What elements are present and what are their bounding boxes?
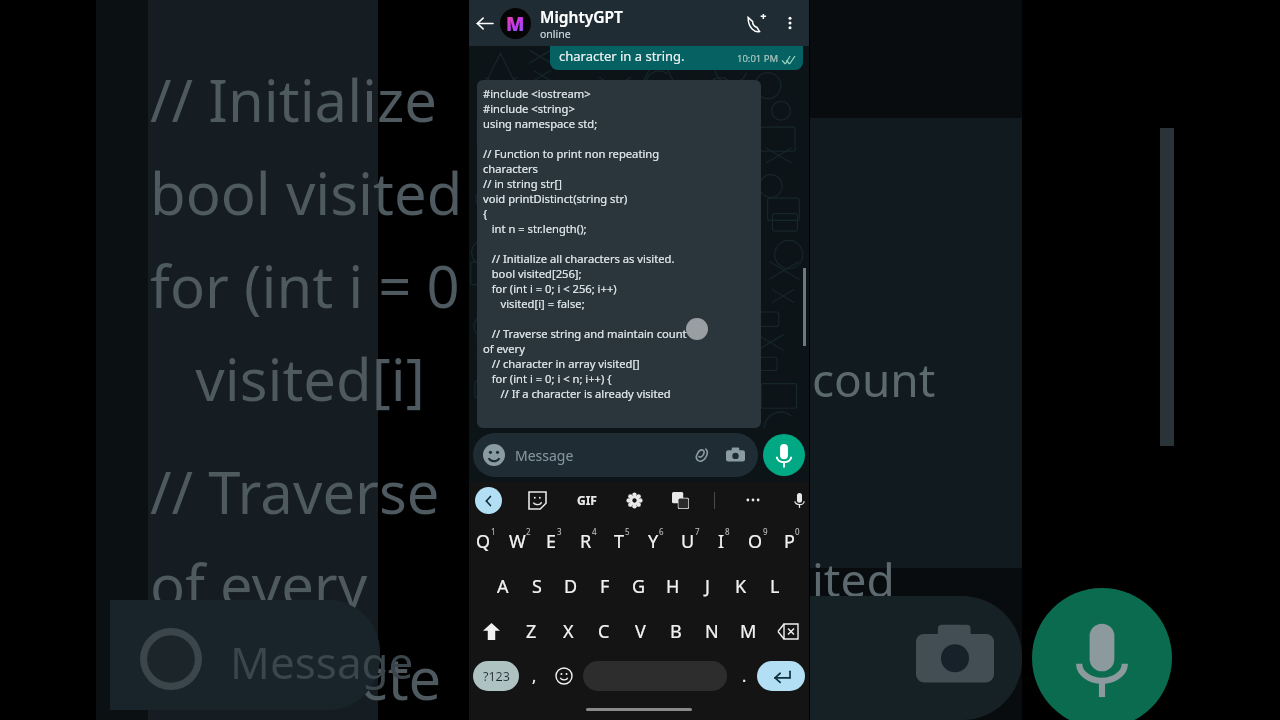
button[interactable]: Z [513,609,550,654]
button[interactable]: Settings [620,486,648,514]
button[interactable]: W [503,518,537,564]
staticText: 4 [592,526,597,537]
button[interactable]: O [741,518,775,564]
button[interactable]: S [520,564,554,609]
staticText: // Traverse [150,452,440,531]
button[interactable]: M [730,609,766,654]
button[interactable]: E [537,518,571,564]
staticText: // character in array visited[] [483,356,640,371]
button[interactable]: ?123 [473,661,519,691]
staticText: P [784,529,795,554]
button[interactable]: GIF [571,484,603,516]
staticText: X [563,619,574,644]
staticText: 5 [625,526,630,537]
button[interactable]: , [519,654,549,698]
staticText: B [670,619,682,644]
staticText: T [614,529,625,554]
button[interactable]: #include <iostream> [477,80,761,428]
staticText: of every [150,545,368,624]
button[interactable]: T [605,518,639,564]
button[interactable]: More options [773,6,807,40]
button[interactable]: K [724,564,758,609]
staticText: V [635,619,646,644]
button[interactable]: G [622,564,656,609]
button[interactable]: U [673,518,707,564]
button[interactable]: F [588,564,622,609]
button[interactable]: Camera [722,442,748,468]
staticText: N [705,619,719,644]
staticText: E [546,529,557,554]
button[interactable]: J [690,564,724,609]
staticText: // characte [150,638,442,717]
button[interactable]: Emoji [549,654,579,698]
staticText: count [812,348,936,411]
button[interactable]: . [731,654,757,698]
button[interactable]: Back [475,487,502,514]
button[interactable]: P [775,518,809,564]
staticText: 9 [763,526,768,537]
button[interactable]: Shift [469,609,513,654]
button[interactable]: Translate [666,486,694,514]
button[interactable]: Message [473,433,758,477]
button[interactable]: Back [469,8,499,38]
button[interactable]: C [586,609,622,654]
staticText: 2 [526,526,531,537]
staticText: F [600,574,610,599]
staticText: visited[i] [150,339,425,418]
staticText: characters [483,161,538,176]
button[interactable]: More [738,485,768,515]
staticText: 7 [695,526,700,537]
button[interactable]: R [571,518,605,564]
button[interactable]: character in a string. [550,46,803,70]
button[interactable]: Profile photo [500,8,531,39]
staticText: D [564,574,578,599]
button[interactable]: Enter [757,661,805,691]
button[interactable]: Backspace [766,609,809,654]
staticText: // Function to print non repeating [483,146,660,161]
staticText: bool visited [150,153,463,232]
button[interactable]: H [656,564,690,609]
staticText: #include <string> [483,101,575,116]
button[interactable]: L [758,564,792,609]
staticText: . [742,665,747,687]
staticText: 0 [795,526,800,537]
staticText: // Initialize [150,60,438,139]
staticText: U [681,529,695,554]
staticText: 1 [491,526,496,537]
button[interactable]: Attach [688,442,714,468]
staticText: Q [476,529,491,554]
staticText: of every [483,341,525,356]
staticText: M [740,619,757,644]
button[interactable]: Voice message [763,434,805,476]
staticText: L [770,574,780,599]
button[interactable]: X [550,609,586,654]
staticText: Y [648,529,659,554]
staticText: I [718,529,725,554]
staticText: ?123 [483,668,510,685]
button[interactable]: Voice input [790,486,809,514]
button[interactable]: V [622,609,658,654]
staticText: J [705,574,710,599]
staticText: #include <iostream> [483,86,591,101]
button[interactable]: Space [583,661,727,691]
button[interactable]: Q [469,518,503,564]
button[interactable]: I [707,518,741,564]
button[interactable]: A [486,564,520,609]
staticText: C [598,619,610,644]
staticText: S [532,574,542,599]
staticText: // in string str[] [483,176,562,191]
button[interactable]: Y [639,518,673,564]
staticText: 3 [557,526,562,537]
button[interactable]: D [554,564,588,609]
button[interactable]: MightyGPT [540,6,739,41]
staticText: void printDistinct(string str) [483,191,628,206]
button[interactable]: Add call [739,6,773,40]
button[interactable]: Stickers [523,486,551,514]
staticText: for (int i = 0 [150,246,460,325]
button[interactable]: B [658,609,694,654]
staticText: character in a string. [559,47,685,65]
button[interactable]: N [694,609,730,654]
